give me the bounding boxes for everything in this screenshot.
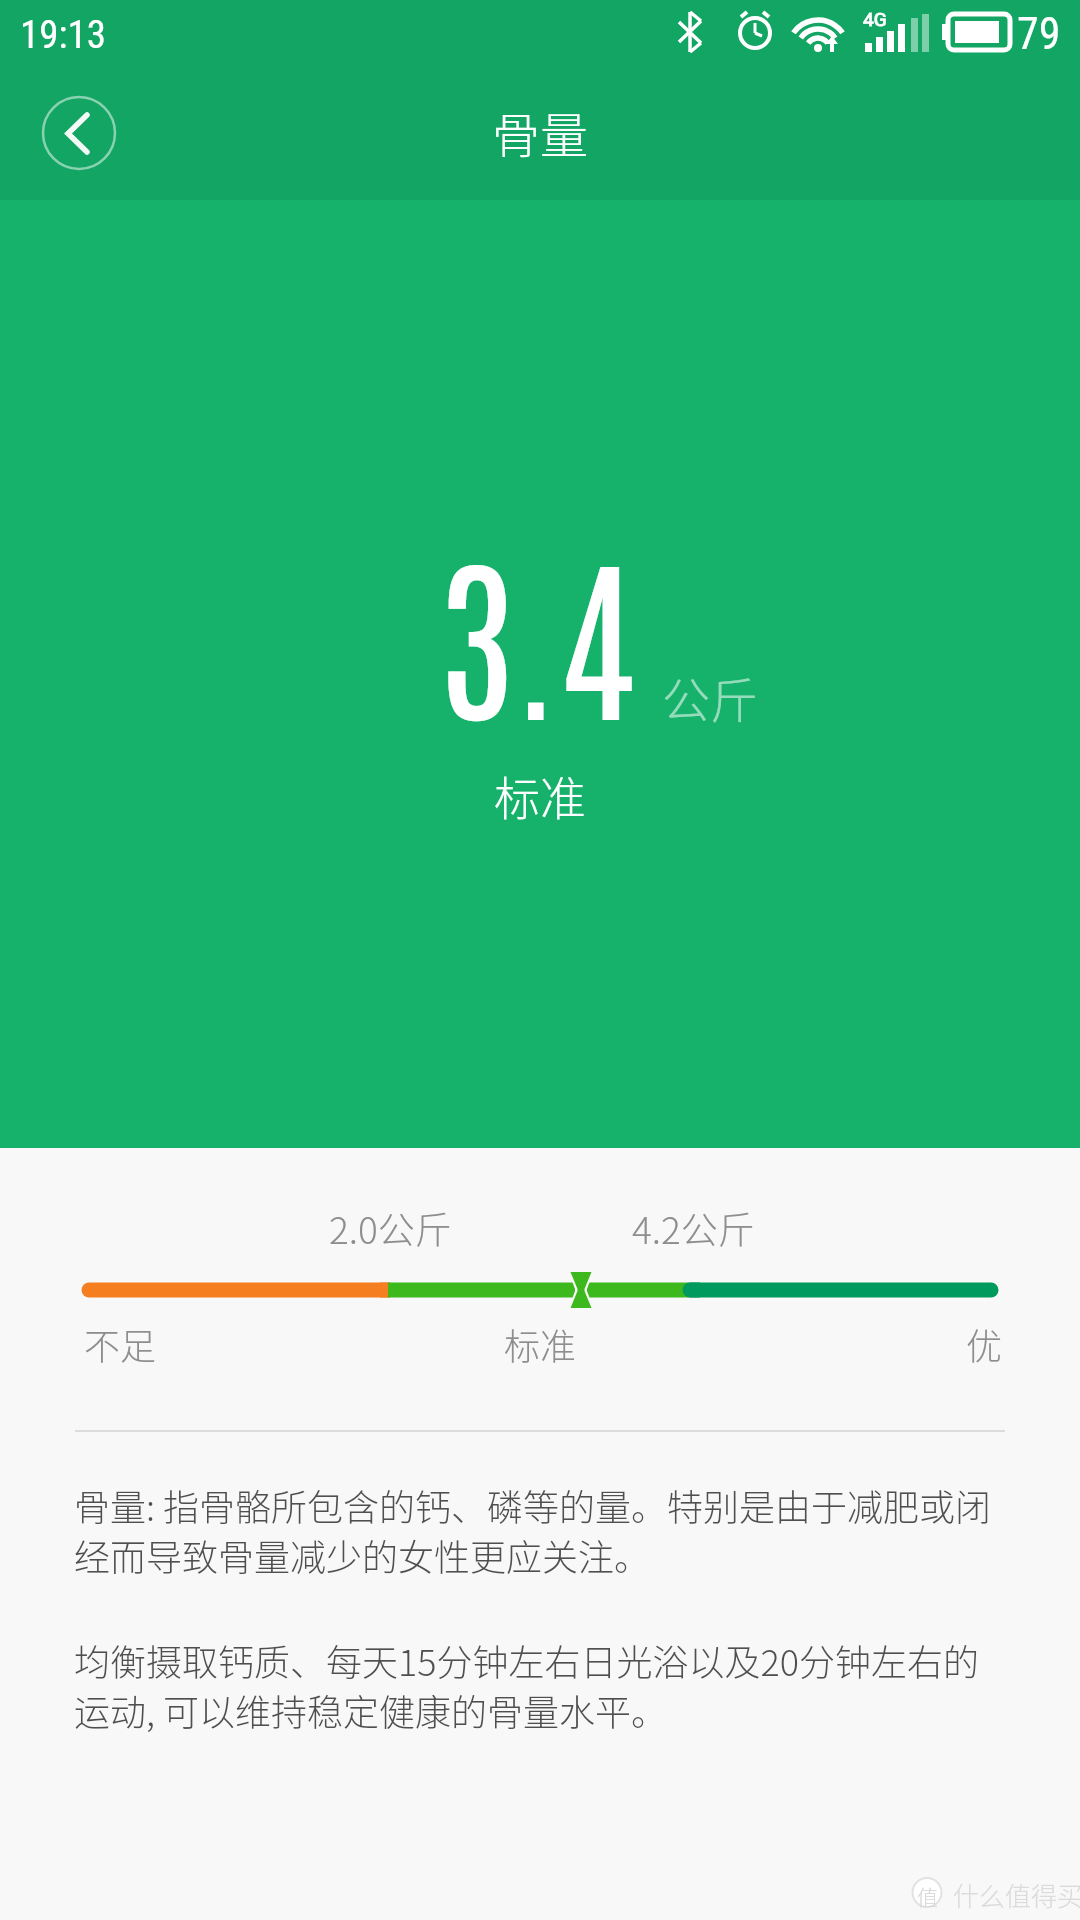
staticText: 4.2公斤 (632, 1201, 755, 1253)
staticText: 4G (863, 8, 887, 30)
staticText: 标准 (494, 762, 586, 829)
button[interactable] (42, 96, 116, 170)
staticText: 不足 (84, 1318, 157, 1370)
staticText: 骨量 (492, 97, 589, 167)
staticText: 什么值得买 (953, 1876, 1080, 1914)
staticText: 公斤 (662, 662, 759, 732)
staticText: 19:13 (20, 12, 107, 58)
staticText: 标准 (504, 1318, 577, 1366)
staticText: 2.0公斤 (329, 1201, 452, 1253)
staticText: 79 (1017, 8, 1061, 60)
staticText: 值 (917, 1881, 938, 1911)
staticText: 优 (966, 1318, 1003, 1366)
staticText: 骨量: 指骨骼所包含的钙、磷等的量。特别是由于减肥或闭 经而导致骨量减少的女性更… (74, 1479, 1034, 1581)
staticText: 均衡摄取钙质、每天15分钟左右日光浴以及20分钟左右的 运动, 可以维持稳定健康… (74, 1634, 1034, 1736)
staticText: 3.4 (439, 514, 634, 744)
